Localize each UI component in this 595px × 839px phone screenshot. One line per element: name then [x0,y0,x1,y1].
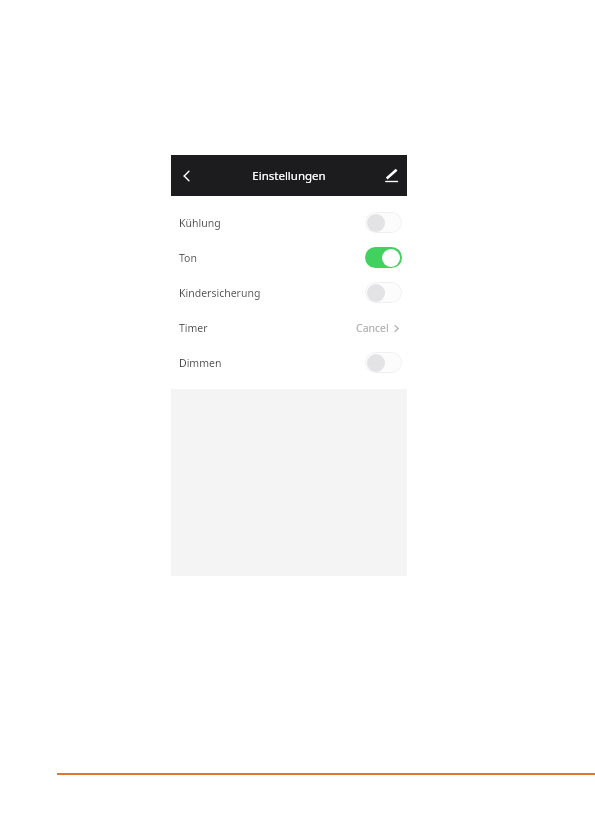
button[interactable]: Kindersicherung [171,275,407,310]
button[interactable]: Edit [375,155,407,196]
button[interactable]: Toggle off [365,352,402,373]
button[interactable]: Timer [171,310,407,345]
staticText: Timer [179,321,208,335]
staticText: Kindersicherung [179,286,261,300]
button[interactable]: Toggle on [365,247,402,268]
staticText: Kühlung [179,216,221,230]
staticText: Cancel [356,321,389,335]
button[interactable]: Back [171,155,203,196]
button[interactable]: Kühlung [171,205,407,240]
button[interactable]: Ton [171,240,407,275]
staticText: Einstellungen [252,168,326,184]
button[interactable]: Toggle off [365,212,402,233]
staticText: Dimmen [179,356,222,370]
button[interactable]: Dimmen [171,345,407,380]
button[interactable]: Toggle off [365,282,402,303]
staticText: Ton [179,251,197,265]
